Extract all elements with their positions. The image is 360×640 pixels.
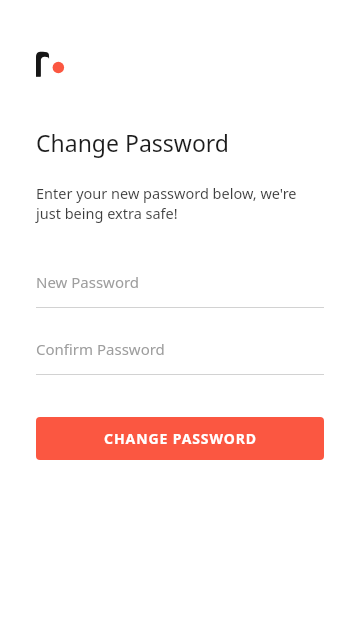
- staticText: CHANGE PASSWORD: [104, 429, 257, 448]
- other: App logo: [36, 50, 66, 78]
- button[interactable]: Confirm Password: [36, 334, 324, 375]
- staticText: Confirm Password: [36, 339, 165, 359]
- staticText: New Password: [36, 272, 140, 292]
- staticText: Enter your new password below, we're jus…: [36, 183, 297, 224]
- button[interactable]: CHANGE PASSWORD: [36, 417, 324, 460]
- button[interactable]: New Password: [36, 267, 324, 308]
- staticText: Change Password: [36, 127, 229, 158]
